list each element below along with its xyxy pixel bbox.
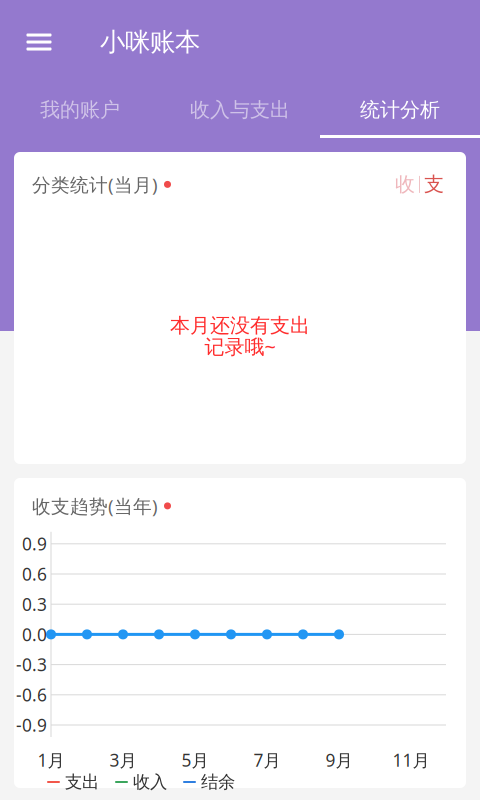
staticText: 收入与支出 — [190, 97, 290, 122]
button[interactable]: 收入与支出 — [160, 78, 320, 138]
staticText: 结余 — [201, 771, 235, 793]
staticText: 11月 — [392, 748, 429, 771]
staticText: 收 — [395, 172, 415, 197]
button[interactable]: 我的账户 — [0, 78, 160, 138]
staticText: 记录哦~ — [204, 333, 275, 359]
staticText: 统计分析 — [360, 97, 440, 122]
staticText: 0.3 — [22, 593, 47, 616]
staticText: 0.6 — [22, 562, 47, 585]
button[interactable]: 收 — [391, 172, 419, 197]
staticText: 支出 — [65, 771, 99, 793]
button[interactable]: 统计分析 — [320, 78, 480, 138]
staticText: -0.9 — [16, 713, 47, 736]
staticText: 本月还没有支出 — [170, 313, 310, 338]
staticText: 0.0 — [22, 623, 47, 646]
staticText: 小咪账本 — [100, 26, 200, 57]
staticText: 分类统计(当月) — [32, 172, 158, 197]
staticText: 3月 — [109, 748, 136, 771]
staticText: 7月 — [253, 748, 280, 771]
button[interactable]: Menu — [11, 14, 67, 70]
button[interactable]: 支 — [420, 172, 448, 197]
staticText: -0.6 — [16, 683, 47, 706]
staticText: 收支趋势(当年) — [32, 493, 158, 518]
staticText: 收入 — [133, 771, 167, 793]
staticText: 1月 — [37, 748, 64, 771]
staticText: 我的账户 — [40, 97, 120, 122]
staticText: 0.9 — [22, 532, 47, 555]
staticText: 9月 — [325, 748, 352, 771]
staticText: 5月 — [181, 748, 208, 771]
staticText: -0.3 — [16, 653, 47, 676]
staticText: 支 — [424, 172, 444, 197]
